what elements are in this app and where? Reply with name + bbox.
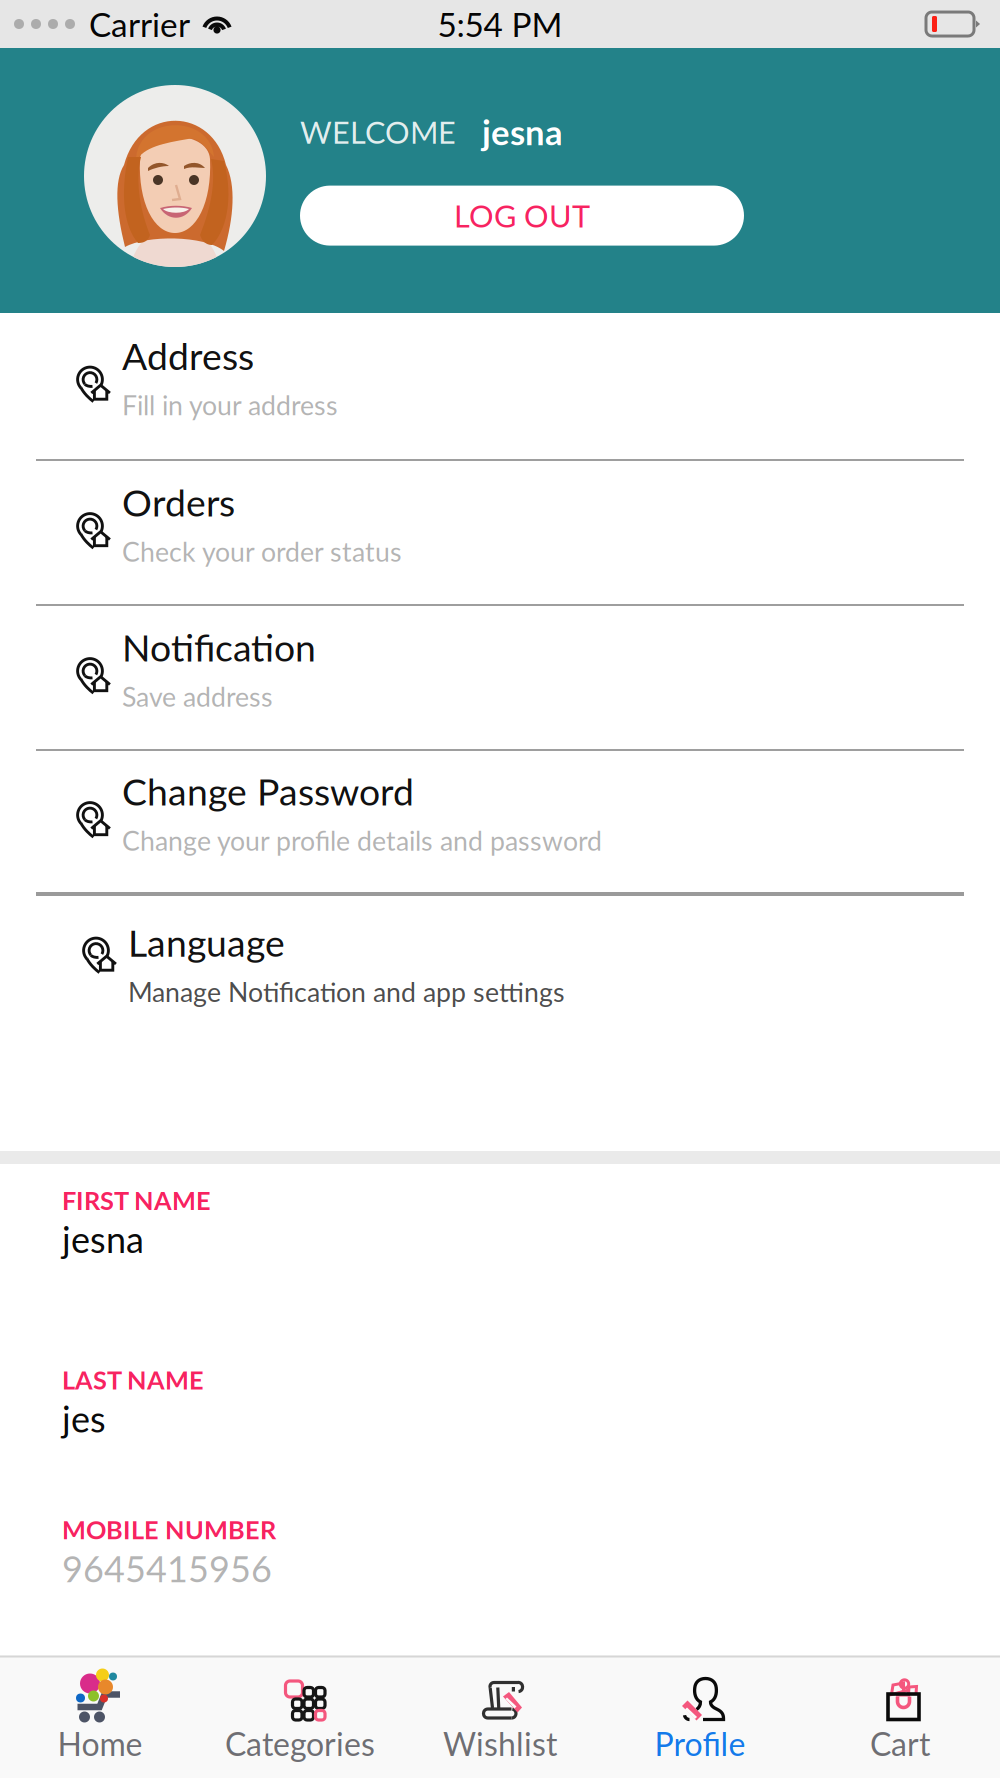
staticText: Fill in your address — [122, 389, 338, 421]
staticText: Orders — [122, 480, 235, 524]
staticText: Change your profile details and password — [122, 824, 602, 856]
button[interactable]: Home — [0, 1660, 200, 1778]
staticText: Categories — [225, 1724, 375, 1763]
button[interactable]: Profile — [600, 1660, 800, 1778]
staticText: Profile — [654, 1724, 745, 1763]
staticText: jes — [62, 1397, 106, 1440]
button[interactable]: Language — [0, 896, 1000, 1151]
button[interactable]: Change Password — [0, 751, 1000, 892]
staticText: LOG OUT — [454, 197, 590, 234]
staticText: Cart — [870, 1724, 930, 1763]
button[interactable]: Wishlist — [400, 1660, 600, 1778]
staticText: MOBILE NUMBER — [62, 1514, 276, 1545]
staticText: Notification — [122, 625, 316, 669]
staticText: LAST NAME — [62, 1365, 204, 1395]
staticText: Wishlist — [443, 1724, 557, 1763]
staticText: 9645415956 — [62, 1547, 272, 1590]
staticText: Home — [57, 1724, 142, 1763]
staticText: Manage Notification and app settings — [128, 976, 565, 1008]
button[interactable]: Address — [0, 313, 1000, 459]
staticText: Language — [128, 920, 285, 965]
staticText: FIRST NAME — [62, 1185, 211, 1215]
button[interactable]: LOG OUT — [300, 186, 744, 246]
button[interactable]: Cart — [800, 1660, 1000, 1778]
staticText: Check your order status — [122, 535, 402, 567]
staticText: 5:54 PM — [437, 4, 562, 44]
staticText: Save address — [122, 680, 273, 712]
button[interactable]: Notification — [0, 606, 1000, 749]
button[interactable]: Categories — [200, 1660, 400, 1778]
staticText: Change Password — [122, 769, 414, 813]
staticText: jesna — [62, 1217, 144, 1261]
button[interactable]: Orders — [0, 461, 1000, 604]
staticText: Address — [122, 333, 254, 378]
staticText: jesna — [482, 111, 563, 153]
staticText: Carrier — [89, 4, 190, 44]
staticText: WELCOME — [300, 113, 456, 150]
